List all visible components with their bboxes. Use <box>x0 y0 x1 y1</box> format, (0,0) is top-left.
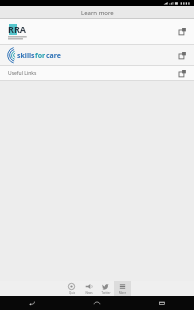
button[interactable]: Home <box>64 296 129 310</box>
button[interactable]: Useful Links <box>0 66 194 80</box>
staticText: for <box>35 51 46 61</box>
staticText: News <box>85 291 93 295</box>
staticText: care <box>46 51 61 61</box>
staticText: RRA <box>8 23 27 35</box>
button[interactable]: Quiz <box>63 281 80 296</box>
staticText: Useful Links <box>8 70 37 77</box>
other: Quiz <box>68 283 75 290</box>
button[interactable]: News <box>80 281 97 296</box>
other: News <box>85 283 92 290</box>
button[interactable]: Back <box>0 296 64 310</box>
other: Twitter <box>102 283 109 290</box>
staticText: Learn more <box>81 9 114 17</box>
button[interactable]: Twitter <box>97 281 114 296</box>
button[interactable]: More <box>114 281 131 296</box>
staticText: Quiz <box>69 291 75 295</box>
staticText: skills <box>17 51 35 61</box>
button[interactable]: skills for care <box>0 45 194 65</box>
staticText: Twitter <box>101 291 111 295</box>
button[interactable]: Recent apps <box>129 296 194 310</box>
button[interactable]: RRA <box>0 19 194 44</box>
staticText: More <box>119 291 126 295</box>
other: More <box>119 283 126 290</box>
other: Open link <box>179 52 186 59</box>
other: Open link <box>179 70 186 77</box>
other: Open link <box>179 28 186 35</box>
